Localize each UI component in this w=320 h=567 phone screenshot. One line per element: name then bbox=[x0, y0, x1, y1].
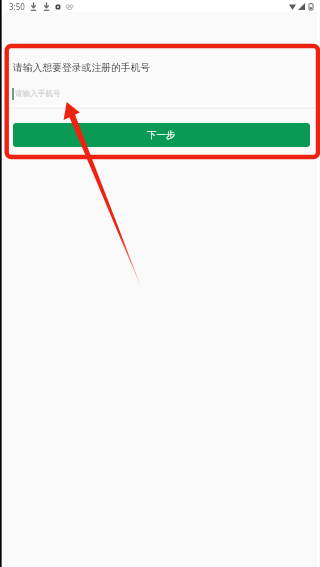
staticText: 请输入手机号 bbox=[15, 89, 61, 99]
button[interactable]: 请输入手机号 bbox=[0, 87, 320, 101]
other: Wi-Fi bbox=[289, 4, 296, 10]
staticText: 下一步 bbox=[147, 129, 176, 141]
button[interactable]: 下一步 bbox=[13, 123, 310, 147]
staticText: 请输入想要登录或注册的手机号 bbox=[13, 62, 151, 74]
other: Screen recorder bbox=[55, 4, 61, 10]
other: Mobile signal bbox=[298, 3, 305, 10]
other: Eye care mode bbox=[66, 4, 73, 10]
other: Download bbox=[30, 2, 37, 11]
other: Battery bbox=[309, 3, 313, 10]
other: Download bbox=[43, 2, 50, 11]
staticText: 3:50 bbox=[9, 1, 25, 12]
